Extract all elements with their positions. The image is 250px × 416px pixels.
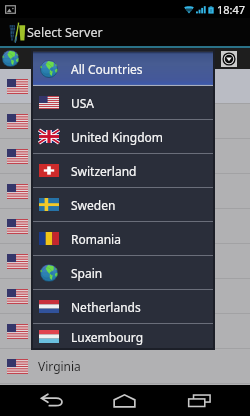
button[interactable] [0,174,250,208]
staticText: Virginia [38,358,81,374]
staticText: Sweden [71,197,116,213]
staticText: USA [71,95,95,111]
button[interactable] [0,69,250,103]
button[interactable]: Home [104,385,144,416]
button[interactable]: United Kingdom [33,120,213,153]
button[interactable]: Netherlands [33,290,213,323]
button[interactable]: Virginia [0,349,250,383]
staticText: All Countries [71,61,143,77]
button[interactable]: Back [32,385,72,416]
button[interactable]: Spain [33,256,213,289]
staticText: 18:47 [217,2,246,17]
button[interactable] [0,384,250,416]
button[interactable]: Luxembourg [33,324,213,348]
staticText: Select Server [27,24,103,41]
button[interactable]: Recents [179,385,219,416]
staticText: United Kingdom [71,129,164,145]
button[interactable] [0,314,250,348]
staticText: Luxembourg [71,329,144,345]
staticText: Spain [71,265,103,281]
button[interactable]: Expand [0,48,250,69]
button[interactable] [0,104,250,138]
button[interactable] [0,244,250,278]
button[interactable]: Sweden [33,188,213,221]
button[interactable]: USA [33,86,213,119]
button[interactable] [0,209,250,243]
button[interactable] [0,279,250,313]
button[interactable]: Switzerland [33,154,213,187]
button[interactable]: Expand [221,51,237,67]
staticText: Netherlands [71,299,141,315]
button[interactable]: All Countries [33,52,213,85]
button[interactable]: Romania [33,222,213,255]
button[interactable] [0,139,250,173]
staticText: Romania [71,231,121,247]
staticText: Switzerland [71,163,137,179]
